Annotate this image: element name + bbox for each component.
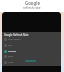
staticText: Fast	[8, 44, 13, 47]
staticText: refresh rate	[23, 6, 41, 10]
staticText: Google	[25, 0, 40, 6]
button[interactable]: Auto	[2, 60, 61, 65]
staticText: Auto	[8, 61, 14, 64]
button[interactable]: Apply	[25, 60, 36, 62]
staticText: Slow	[8, 55, 14, 58]
button[interactable]: The Creator	[2, 37, 61, 42]
button[interactable]: Slow	[2, 54, 61, 59]
staticText: Normal	[8, 50, 17, 53]
button[interactable]: Normal	[2, 49, 61, 54]
button[interactable]: Fast	[2, 43, 61, 48]
staticText: Google Refresh Rate	[4, 33, 29, 36]
staticText: The Creator	[8, 38, 21, 41]
